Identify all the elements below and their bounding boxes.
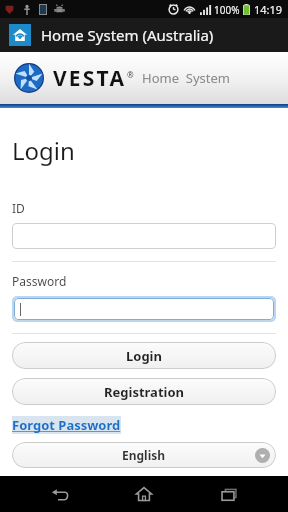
button[interactable]: Forgot Password [12, 416, 121, 434]
button[interactable]: Recent apps [203, 476, 255, 512]
staticText: Home System [142, 69, 230, 87]
staticText: 100% [214, 3, 240, 17]
staticText: ® [127, 69, 134, 80]
staticText: 14:19 [254, 2, 283, 17]
staticText: ID [12, 200, 25, 216]
staticText: Login [12, 134, 75, 167]
button[interactable]: Login [12, 342, 276, 369]
button[interactable]: English [12, 442, 276, 468]
staticText: Forgot Password [12, 416, 121, 434]
staticText: VESTA [53, 64, 127, 93]
button[interactable] [14, 298, 274, 320]
button[interactable]: Registration [12, 378, 276, 405]
button[interactable] [12, 223, 276, 249]
staticText: Password [12, 273, 67, 289]
staticText: English [122, 447, 166, 463]
staticText: Registration [104, 383, 185, 401]
button[interactable]: Back [33, 476, 85, 512]
button[interactable]: Home [118, 476, 170, 512]
staticText: Home System (Australia) [41, 25, 214, 45]
staticText: Login [126, 347, 162, 365]
